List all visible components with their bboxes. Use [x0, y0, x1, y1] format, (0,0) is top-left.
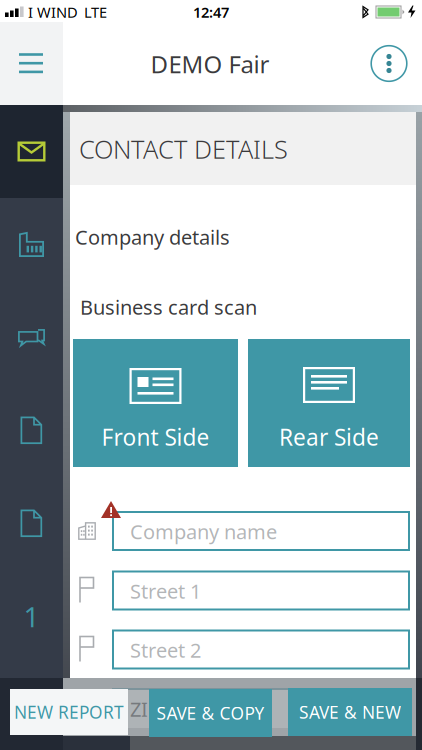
button[interactable]: Street 1	[112, 570, 410, 610]
button[interactable]: SAVE & NEW	[288, 688, 412, 736]
button[interactable]: Street 2	[112, 629, 410, 669]
button[interactable]: More options	[370, 44, 408, 82]
button[interactable]: Messages	[0, 291, 63, 384]
staticText: Company name	[130, 518, 277, 545]
staticText: Business card scan	[80, 294, 257, 320]
staticText: LTE	[84, 2, 107, 22]
staticText: Street 2	[130, 637, 201, 663]
staticText: NEW REPORT	[14, 700, 124, 723]
staticText: I WIND	[28, 2, 78, 22]
staticText: Street 1	[130, 578, 201, 604]
staticText: Rear Side	[279, 422, 379, 452]
button[interactable]: Company name	[112, 511, 410, 551]
button[interactable]: Documents	[0, 384, 63, 477]
button[interactable]: Scan rear side	[248, 339, 410, 467]
button[interactable]: Contact details	[0, 105, 63, 198]
button[interactable]: Page 1	[0, 570, 63, 663]
staticText: SAVE & COPY	[156, 701, 264, 724]
staticText: 1	[23, 598, 39, 635]
button[interactable]: Scan front side	[73, 339, 238, 467]
staticText: SAVE & NEW	[299, 700, 401, 723]
button[interactable]: SAVE & COPY	[149, 689, 272, 737]
staticText: ZIP	[130, 696, 160, 722]
staticText: Company details	[75, 224, 230, 250]
staticText: Front Side	[101, 422, 209, 452]
staticText: 12:47	[193, 2, 229, 22]
button[interactable]: Menu	[9, 41, 53, 85]
button[interactable]: Notes	[0, 477, 63, 570]
staticText: CONTACT DETAILS	[79, 132, 288, 166]
button[interactable]: NEW REPORT	[10, 689, 128, 735]
staticText: DEMO Fair	[150, 48, 269, 80]
button[interactable]: Company	[0, 198, 63, 291]
